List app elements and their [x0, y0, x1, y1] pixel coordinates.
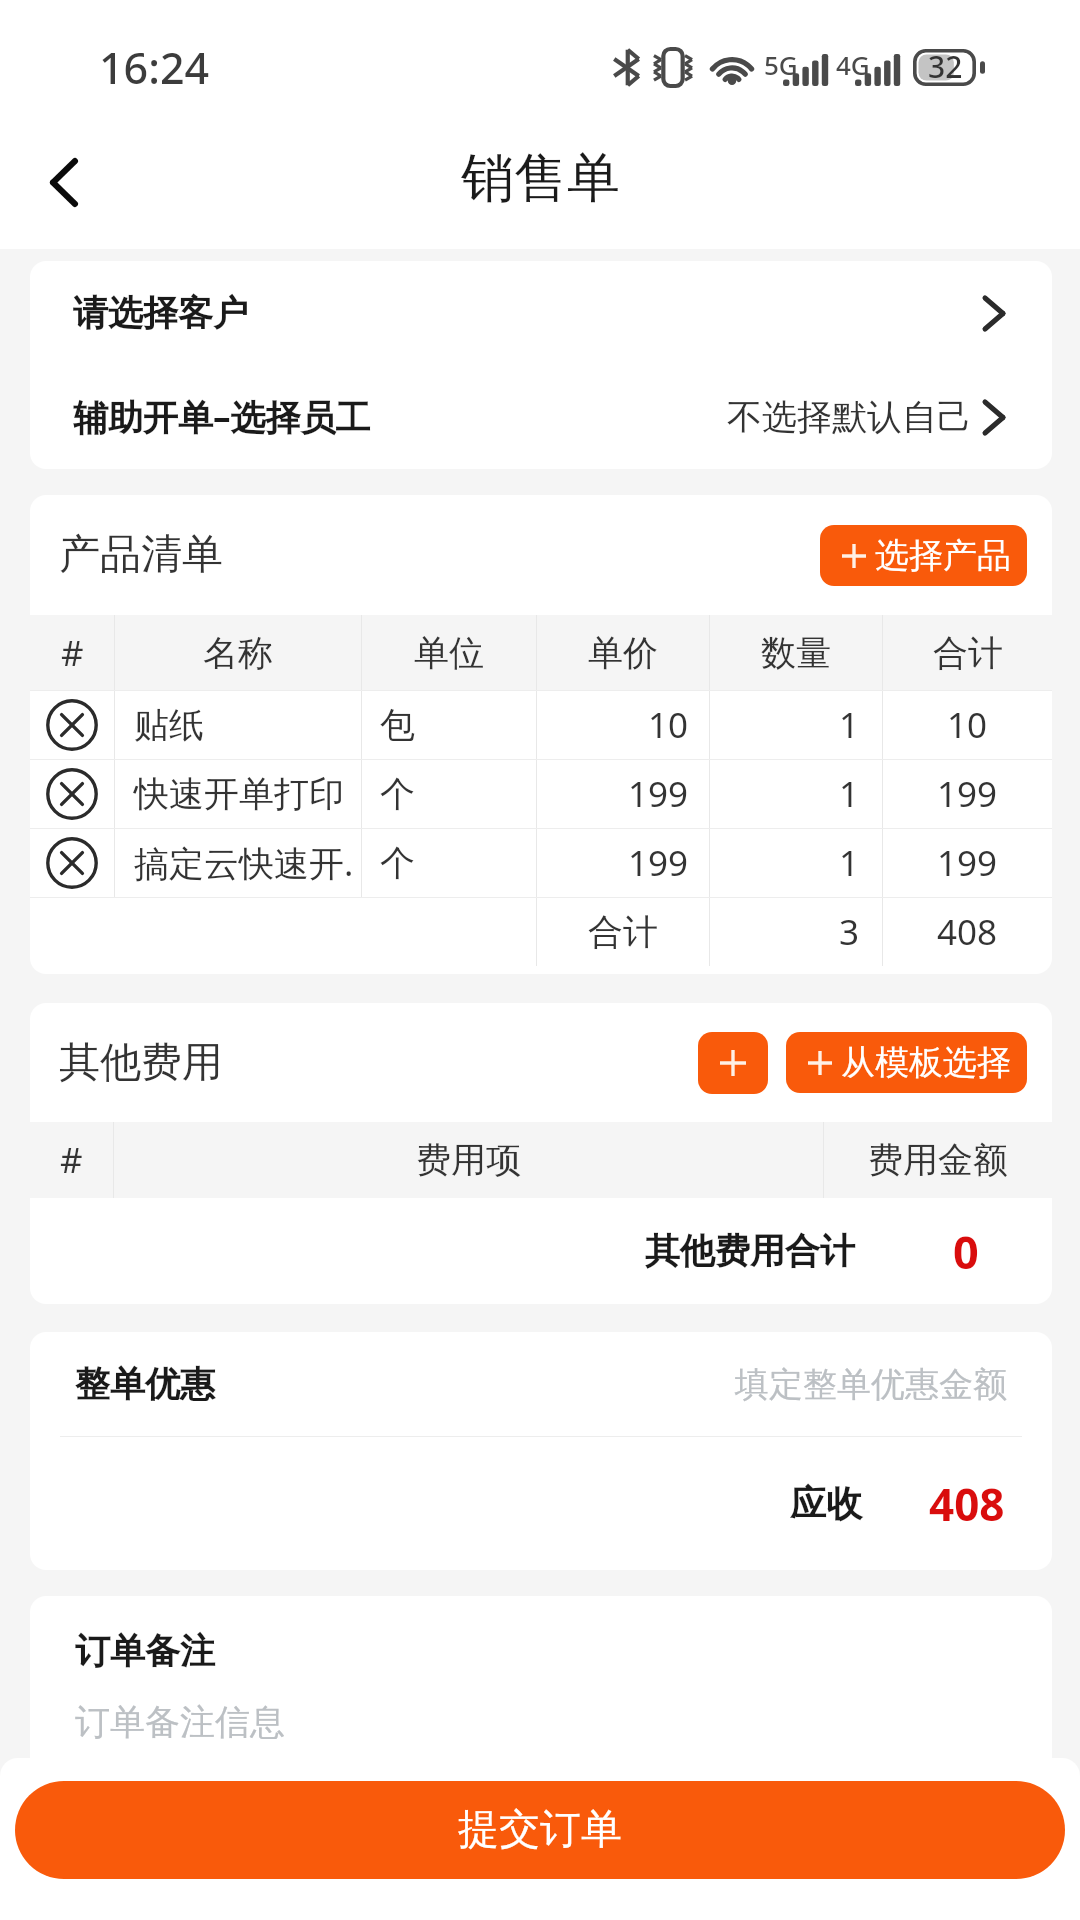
- button[interactable]: Back: [24, 142, 104, 222]
- staticText: 从模板选择: [841, 1041, 1011, 1084]
- button[interactable]: Remove 快速开单打印: [46, 768, 98, 820]
- staticText: 1: [839, 839, 860, 887]
- staticText: 快速开单打印: [134, 772, 344, 816]
- staticText: 1: [839, 770, 860, 818]
- staticText: 其他费用: [59, 1037, 223, 1089]
- staticText: 合计: [588, 910, 658, 954]
- staticText: 请选择客户: [73, 291, 248, 335]
- staticText: 1: [839, 701, 860, 749]
- staticText: 4G: [836, 47, 870, 82]
- staticText: 不选择默认自己: [727, 395, 972, 439]
- staticText: 199: [628, 770, 689, 818]
- button[interactable]: 整单优惠: [30, 1332, 1052, 1436]
- staticText: 10: [947, 701, 988, 749]
- staticText: 199: [628, 839, 689, 887]
- button[interactable]: 辅助开单–选择员工: [30, 365, 1052, 469]
- staticText: #: [60, 1136, 83, 1184]
- staticText: 销售单: [461, 145, 620, 212]
- staticText: 5G: [764, 47, 798, 82]
- staticText: 贴纸: [134, 703, 204, 747]
- button[interactable]: Remove 搞定云快速开.: [46, 837, 98, 889]
- staticText: 个: [380, 841, 415, 885]
- button[interactable]: 订单备注: [30, 1596, 1052, 1804]
- staticText: 选择产品: [875, 534, 1011, 577]
- staticText: 10: [648, 701, 689, 749]
- staticText: 填定整单优惠金额: [735, 1363, 1007, 1406]
- staticText: 其他费用合计: [645, 1229, 855, 1273]
- staticText: 名称: [203, 631, 273, 675]
- staticText: 费用金额: [868, 1138, 1008, 1182]
- button[interactable]: Add fee: [698, 1032, 768, 1094]
- button[interactable]: 选择产品: [820, 525, 1027, 586]
- staticText: 合计: [933, 631, 1003, 675]
- staticText: 订单备注: [75, 1629, 215, 1673]
- staticText: 408: [929, 1474, 1005, 1534]
- button[interactable]: 请选择客户: [30, 261, 1052, 365]
- staticText: 199: [937, 839, 998, 887]
- staticText: 408: [937, 908, 998, 956]
- staticText: 应收: [790, 1481, 862, 1526]
- button[interactable]: 提交订单: [15, 1781, 1065, 1879]
- staticText: 订单备注信息: [75, 1700, 285, 1744]
- staticText: 搞定云快速开.: [134, 839, 354, 887]
- staticText: 整单优惠: [75, 1362, 215, 1406]
- staticText: 16:24: [99, 38, 210, 97]
- staticText: 数量: [761, 631, 831, 675]
- staticText: 32: [928, 46, 963, 87]
- staticText: 包: [380, 703, 415, 747]
- staticText: #: [61, 629, 84, 677]
- staticText: 0: [953, 1221, 979, 1282]
- staticText: 单位: [414, 631, 484, 675]
- staticText: 费用项: [416, 1138, 521, 1182]
- button[interactable]: 从模板选择: [786, 1032, 1027, 1093]
- staticText: 辅助开单–选择员工: [73, 393, 371, 441]
- staticText: 199: [937, 770, 998, 818]
- staticText: 个: [380, 772, 415, 816]
- staticText: 提交订单: [458, 1804, 622, 1856]
- staticText: 3: [839, 908, 860, 956]
- staticText: 产品清单: [59, 529, 223, 581]
- staticText: 单价: [588, 631, 658, 675]
- button[interactable]: Remove 贴纸: [46, 699, 98, 751]
